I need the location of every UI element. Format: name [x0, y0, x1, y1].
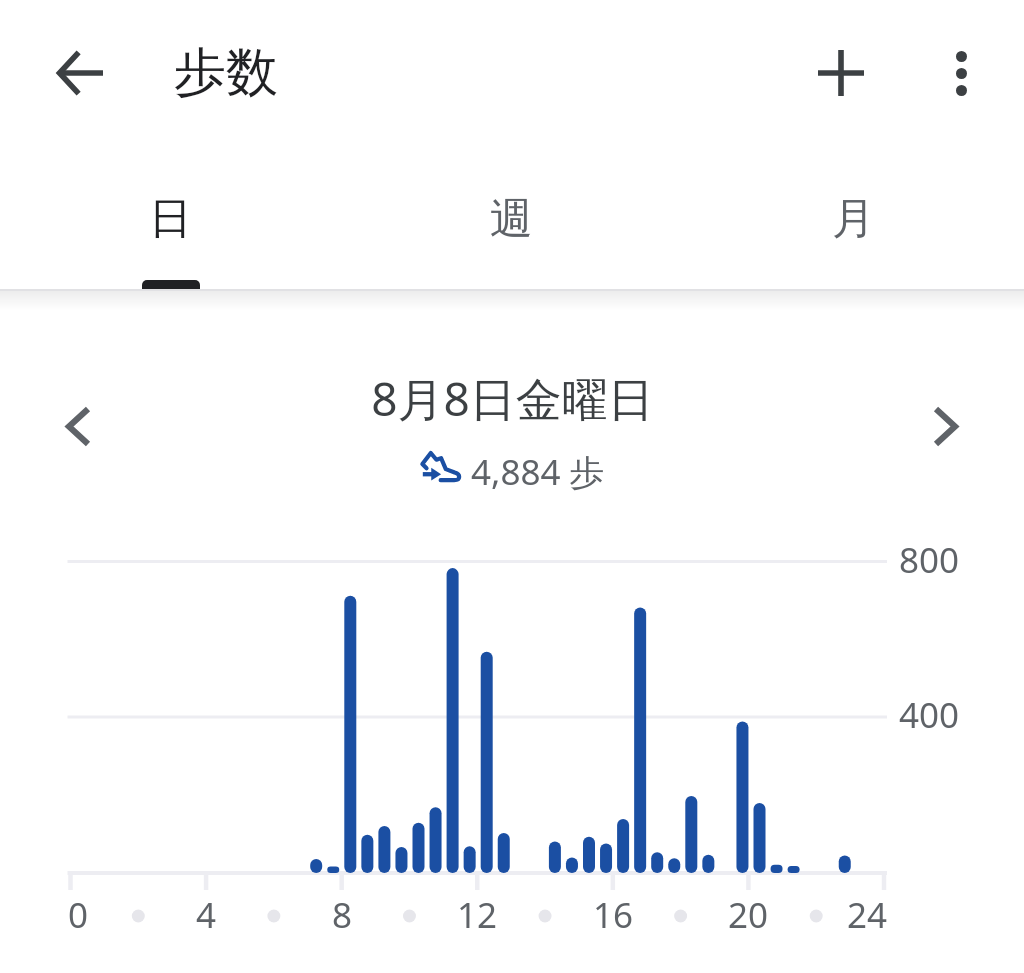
button[interactable]: 週 — [341, 146, 682, 289]
staticText: 歩数 — [174, 40, 278, 106]
button[interactable]: More options — [921, 33, 1001, 113]
staticText: 4,884 歩 — [471, 448, 605, 496]
staticText: 日 — [149, 192, 192, 246]
button[interactable]: Back — [40, 33, 120, 113]
staticText: 12 — [457, 891, 498, 939]
staticText: 16 — [593, 891, 634, 939]
staticText: 8月8日金曜日 — [371, 367, 654, 430]
button[interactable]: Next day — [907, 388, 983, 464]
staticText: 8 — [332, 891, 353, 939]
staticText: 800 — [899, 536, 960, 584]
button[interactable]: Add — [801, 33, 881, 113]
button[interactable]: 日 — [0, 146, 341, 289]
staticText: 400 — [899, 691, 960, 739]
staticText: 24 — [847, 891, 888, 939]
staticText: 20 — [728, 891, 769, 939]
staticText: 週 — [490, 192, 533, 246]
staticText: 4 — [196, 891, 217, 939]
button[interactable]: Previous day — [40, 388, 116, 464]
staticText: 月 — [832, 192, 875, 246]
button[interactable]: 月 — [683, 146, 1024, 289]
staticText: 0 — [68, 891, 89, 939]
